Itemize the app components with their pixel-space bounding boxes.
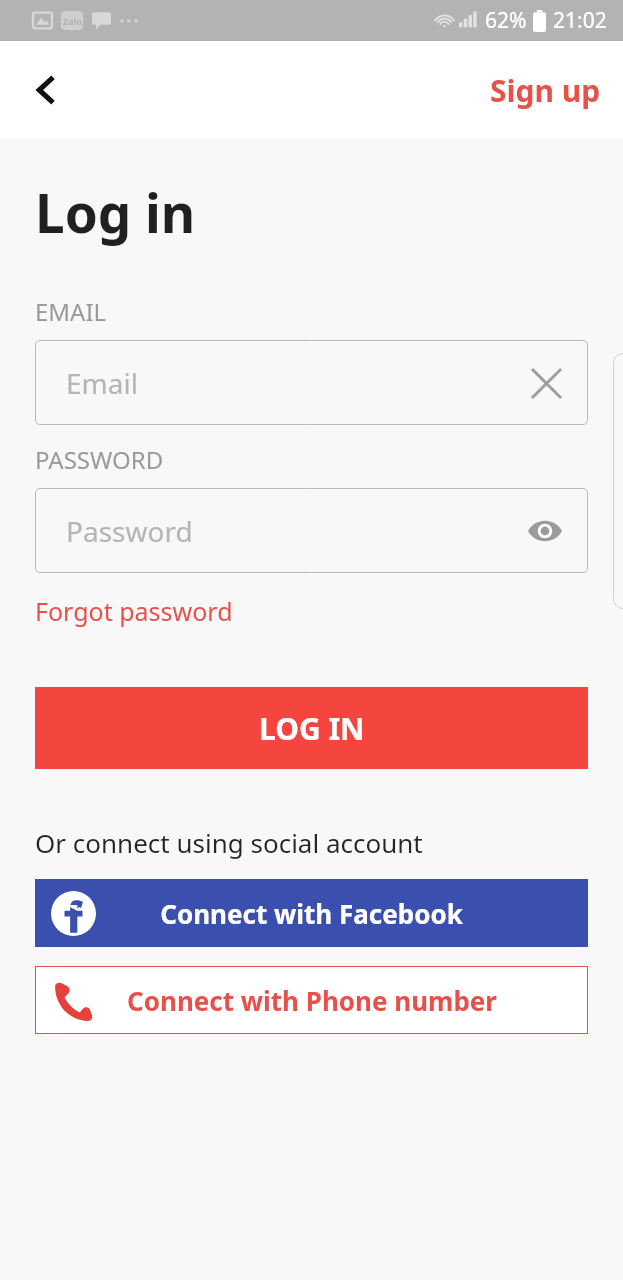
button[interactable]: Clear: [526, 363, 566, 403]
staticText: Connect with Facebook: [160, 896, 463, 931]
staticText: Connect with Phone number: [127, 983, 497, 1018]
staticText: Zalo: [63, 15, 82, 27]
button[interactable]: Connect with Facebook: [35, 879, 588, 947]
staticText: PASSWORD: [35, 443, 164, 476]
staticText: Sign up: [490, 70, 601, 111]
staticText: EMAIL: [35, 295, 107, 328]
staticText: Forgot password: [35, 594, 233, 628]
button[interactable]: Password: [35, 488, 588, 573]
staticText: Password: [66, 512, 193, 550]
staticText: LOG IN: [259, 708, 365, 749]
staticText: 62%: [485, 6, 527, 35]
staticText: Log in: [35, 176, 196, 248]
button[interactable]: Back: [16, 59, 78, 121]
button[interactable]: Email: [35, 340, 588, 425]
staticText: Email: [66, 364, 138, 402]
staticText: Or connect using social account: [35, 825, 423, 860]
button[interactable]: LOG IN: [35, 687, 588, 769]
button[interactable]: Connect with Phone number: [35, 966, 588, 1034]
button[interactable]: Show password: [524, 510, 566, 552]
staticText: 21:02: [553, 6, 607, 35]
button[interactable]: Forgot password: [35, 594, 233, 628]
button[interactable]: Sign up: [468, 56, 623, 125]
